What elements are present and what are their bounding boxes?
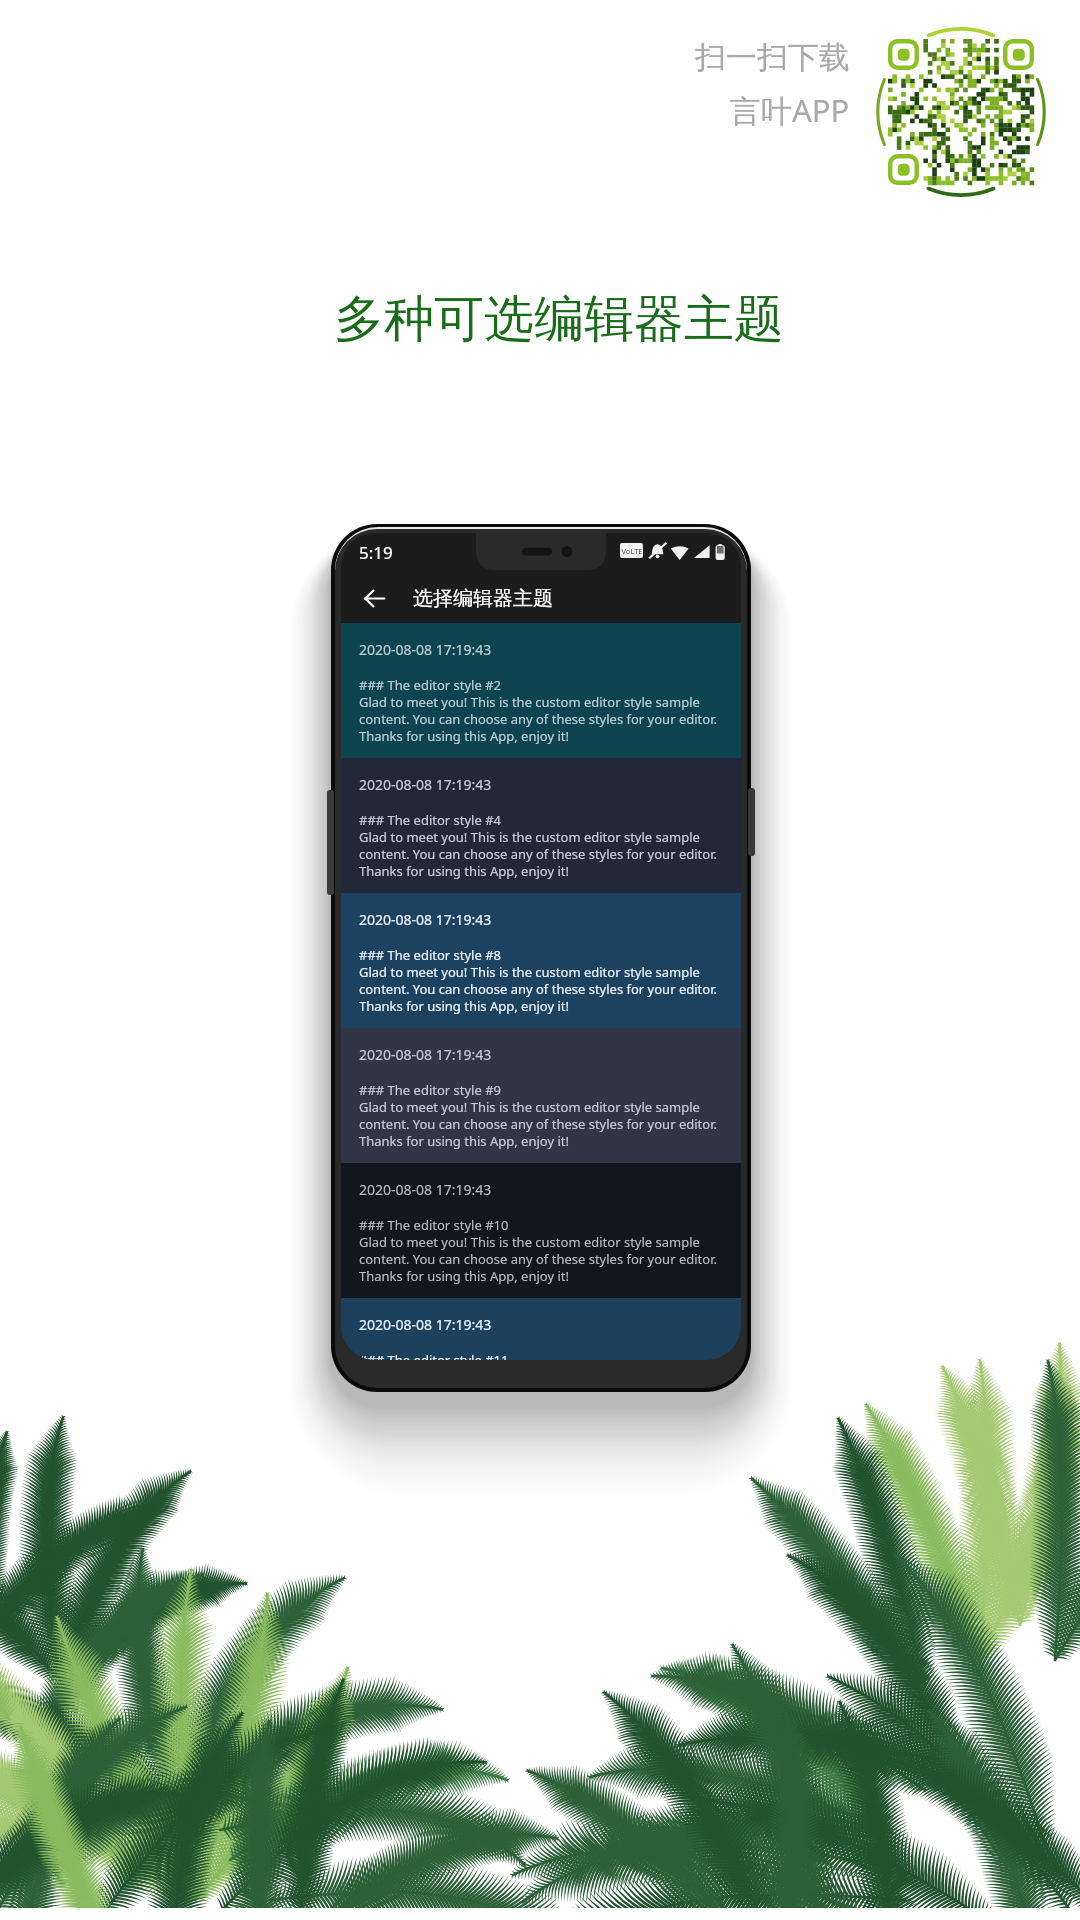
button[interactable]: 2020-08-08 17:19:43 [341,623,741,758]
staticText: 扫一扫下载 [695,38,850,77]
staticText: 2020-08-08 17:19:43 [359,1315,492,1334]
staticText: ### The editor style #10 Glad to meet yo… [359,1216,717,1285]
staticText: 2020-08-08 17:19:43 [359,1045,492,1064]
staticText: 言叶APP [730,89,850,131]
button[interactable]: 2020-08-08 17:19:43 [341,1298,741,1360]
staticText: ### The editor style #8 Glad to meet you… [359,946,717,1015]
staticText: 2020-08-08 17:19:43 [359,640,492,659]
staticText: 5:19 [359,541,393,564]
staticText: ### The editor style #2 Glad to meet you… [359,676,717,745]
button[interactable]: 2020-08-08 17:19:43 [341,893,741,1028]
staticText: 2020-08-08 17:19:43 [359,910,492,929]
button[interactable]: 2020-08-08 17:19:43 [341,1163,741,1298]
staticText: VoLTE [621,546,643,556]
button[interactable]: Back [351,575,397,621]
button[interactable]: Scan QR code to download the app [873,24,1049,200]
staticText: 选择编辑器主题 [413,586,553,611]
staticText: 多种可选编辑器主题 [334,288,784,351]
staticText: ### The editor style #4 Glad to meet you… [359,811,717,880]
button[interactable]: 2020-08-08 17:19:43 [341,758,741,893]
staticText: 2020-08-08 17:19:43 [359,1180,492,1199]
button[interactable]: 2020-08-08 17:19:43 [341,1028,741,1163]
staticText: ### The editor style #9 Glad to meet you… [359,1081,717,1150]
staticText: ### The editor style #11 Glad to meet yo… [359,1351,717,1360]
staticText: 2020-08-08 17:19:43 [359,775,492,794]
